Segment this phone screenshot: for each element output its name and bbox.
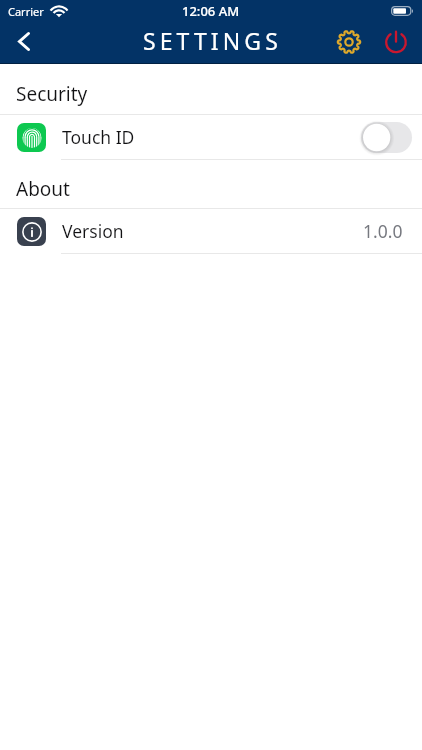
staticText: Carrier bbox=[8, 4, 44, 19]
staticText: Security bbox=[16, 81, 88, 107]
staticText: Touch ID bbox=[62, 125, 135, 149]
button[interactable]: Version bbox=[0, 209, 422, 254]
staticText: 1.0.0 bbox=[363, 219, 403, 243]
button[interactable]: Back bbox=[0, 22, 46, 64]
button[interactable]: Settings bbox=[329, 22, 369, 62]
staticText: SETTINGS bbox=[143, 25, 282, 56]
staticText: About bbox=[16, 176, 70, 202]
button[interactable]: Touch ID toggle bbox=[361, 122, 412, 153]
button[interactable]: Touch ID bbox=[0, 115, 422, 160]
staticText: 12:06 AM bbox=[182, 2, 240, 20]
button[interactable]: Power bbox=[376, 21, 416, 61]
staticText: Version bbox=[62, 219, 124, 243]
